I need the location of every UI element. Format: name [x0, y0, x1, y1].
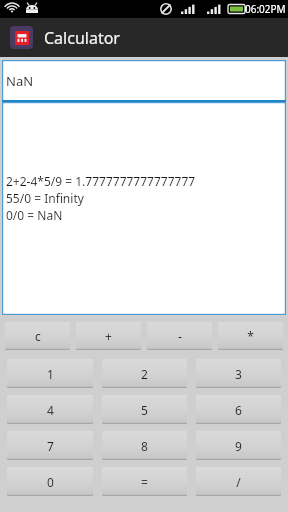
staticText: = — [141, 474, 148, 490]
staticText: 6 — [235, 402, 242, 418]
button[interactable]: 3 — [196, 359, 281, 388]
staticText: 0/0 = NaN — [6, 207, 63, 223]
button[interactable]: / — [196, 467, 281, 496]
staticText: 8 — [141, 438, 148, 454]
staticText: 9 — [235, 438, 242, 454]
button[interactable]: 9 — [196, 431, 281, 460]
button[interactable]: NaN — [2, 60, 286, 102]
staticText: / — [236, 474, 241, 490]
button[interactable]: 2 — [102, 359, 187, 388]
staticText: + — [105, 328, 112, 344]
staticText: * — [247, 328, 254, 344]
button[interactable]: 6 — [196, 395, 281, 424]
staticText: 5 — [141, 402, 148, 418]
staticText: 0 — [47, 474, 54, 490]
button[interactable]: * — [218, 322, 283, 350]
button[interactable]: + — [76, 322, 141, 350]
staticText: Calculator — [44, 27, 120, 49]
button[interactable]: 1 — [7, 359, 93, 388]
button[interactable]: 8 — [102, 431, 187, 460]
staticText: NaN — [6, 72, 34, 90]
staticText: c — [35, 328, 41, 344]
button[interactable]: c — [5, 322, 70, 350]
button[interactable]: - — [147, 322, 212, 350]
staticText: 06:02PM — [245, 2, 286, 16]
staticText: 3 — [235, 366, 242, 382]
staticText: 2+2-4*5/9 = 1.7777777777777777 — [6, 173, 196, 189]
staticText: 4 — [47, 402, 54, 418]
button[interactable]: 0 — [7, 467, 93, 496]
button[interactable]: 4 — [7, 395, 93, 424]
button[interactable]: = — [102, 467, 187, 496]
button[interactable]: 7 — [7, 431, 93, 460]
staticText: - — [178, 328, 182, 344]
staticText: 2 — [141, 366, 148, 382]
button[interactable]: 5 — [102, 395, 187, 424]
staticText: 55/0 = Infinity — [6, 190, 84, 206]
staticText: 7 — [47, 438, 54, 454]
staticText: 1 — [47, 366, 54, 382]
